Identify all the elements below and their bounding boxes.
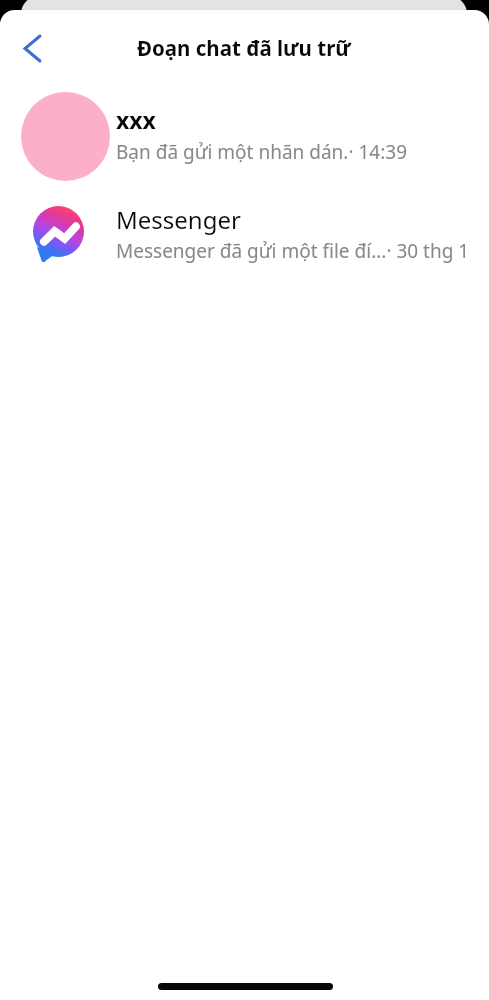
staticText: Messenger xyxy=(116,203,241,236)
button[interactable]: Back xyxy=(10,26,54,70)
staticText: Bạn đã gửi một nhãn dán.· 14:39 xyxy=(116,139,408,165)
button[interactable]: xxx xyxy=(0,88,489,184)
staticText: Messenger đã gửi một file đí...· 30 thg … xyxy=(116,238,470,264)
button[interactable]: Messenger xyxy=(0,187,489,283)
staticText: Đoạn chat đã lưu trữ xyxy=(137,34,351,62)
staticText: xxx xyxy=(116,104,156,135)
